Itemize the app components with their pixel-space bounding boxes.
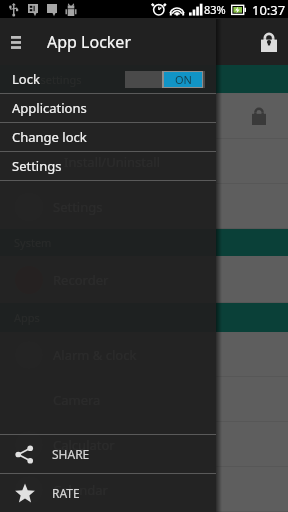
- button[interactable]: Install/Uninstall: [0, 139, 288, 184]
- button[interactable]: SHARE: [0, 435, 216, 473]
- staticText: Applications: [12, 99, 87, 117]
- staticText: Apps: [14, 310, 40, 325]
- staticText: Change lock: [12, 128, 87, 146]
- staticText: App Locker: [47, 31, 131, 53]
- staticText: Settings: [12, 157, 62, 175]
- staticText: 10:37: [252, 1, 286, 19]
- button[interactable]: Alarm & clock: [0, 332, 288, 377]
- button[interactable]: [0, 93, 288, 139]
- staticText: 83%: [204, 2, 226, 17]
- staticText: RATE: [52, 485, 80, 501]
- staticText: Lock settings: [14, 72, 82, 87]
- staticText: SHARE: [52, 446, 90, 462]
- button[interactable]: Calendar: [0, 467, 288, 512]
- button[interactable]: Recorder: [0, 256, 288, 303]
- button[interactable]: RATE: [0, 474, 216, 512]
- button[interactable]: Change lock: [0, 123, 216, 151]
- button[interactable]: Lock: [0, 65, 216, 93]
- button[interactable]: Settings: [0, 152, 216, 180]
- button[interactable]: Applications: [0, 94, 216, 122]
- staticText: Lock: [12, 70, 40, 88]
- button[interactable]: Settings: [0, 184, 288, 229]
- button[interactable]: Open navigation drawer: [0, 18, 32, 65]
- staticText: Calendar: [53, 481, 108, 499]
- staticText: Calculator: [53, 436, 115, 454]
- staticText: ON: [175, 72, 192, 87]
- button[interactable]: Lock: [244, 20, 288, 64]
- button[interactable]: Calculator: [0, 422, 288, 467]
- button[interactable]: Camera: [0, 377, 288, 422]
